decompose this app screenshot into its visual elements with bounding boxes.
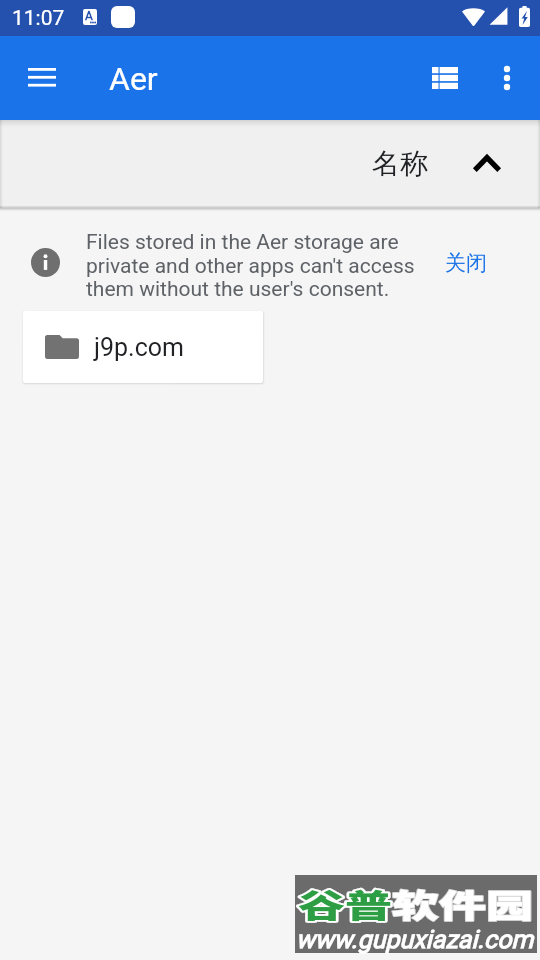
staticText: j9p.com [94, 333, 184, 362]
staticText: Files stored in the Aer storage are priv… [86, 230, 421, 301]
staticText: 软件园 [392, 880, 533, 928]
staticText: 软件园 [392, 880, 533, 928]
button[interactable]: Sort by name, ascending [372, 146, 501, 181]
staticText: A [85, 9, 93, 23]
staticText: www.gupuxiazai.com [296, 925, 534, 954]
button[interactable]: j9p.com [23, 311, 263, 383]
staticText: 名称 [372, 146, 428, 181]
staticText: 11:07 [12, 6, 65, 31]
staticText: 谷普 [298, 880, 392, 928]
button[interactable]: More options [485, 56, 529, 100]
staticText: Aer [109, 60, 158, 98]
staticText: 关闭 [445, 250, 487, 276]
button[interactable]: Open navigation drawer [20, 55, 64, 99]
button[interactable]: 关闭 [445, 250, 487, 276]
staticText: 谷普 [298, 880, 392, 928]
button[interactable]: Switch layout [423, 56, 467, 100]
